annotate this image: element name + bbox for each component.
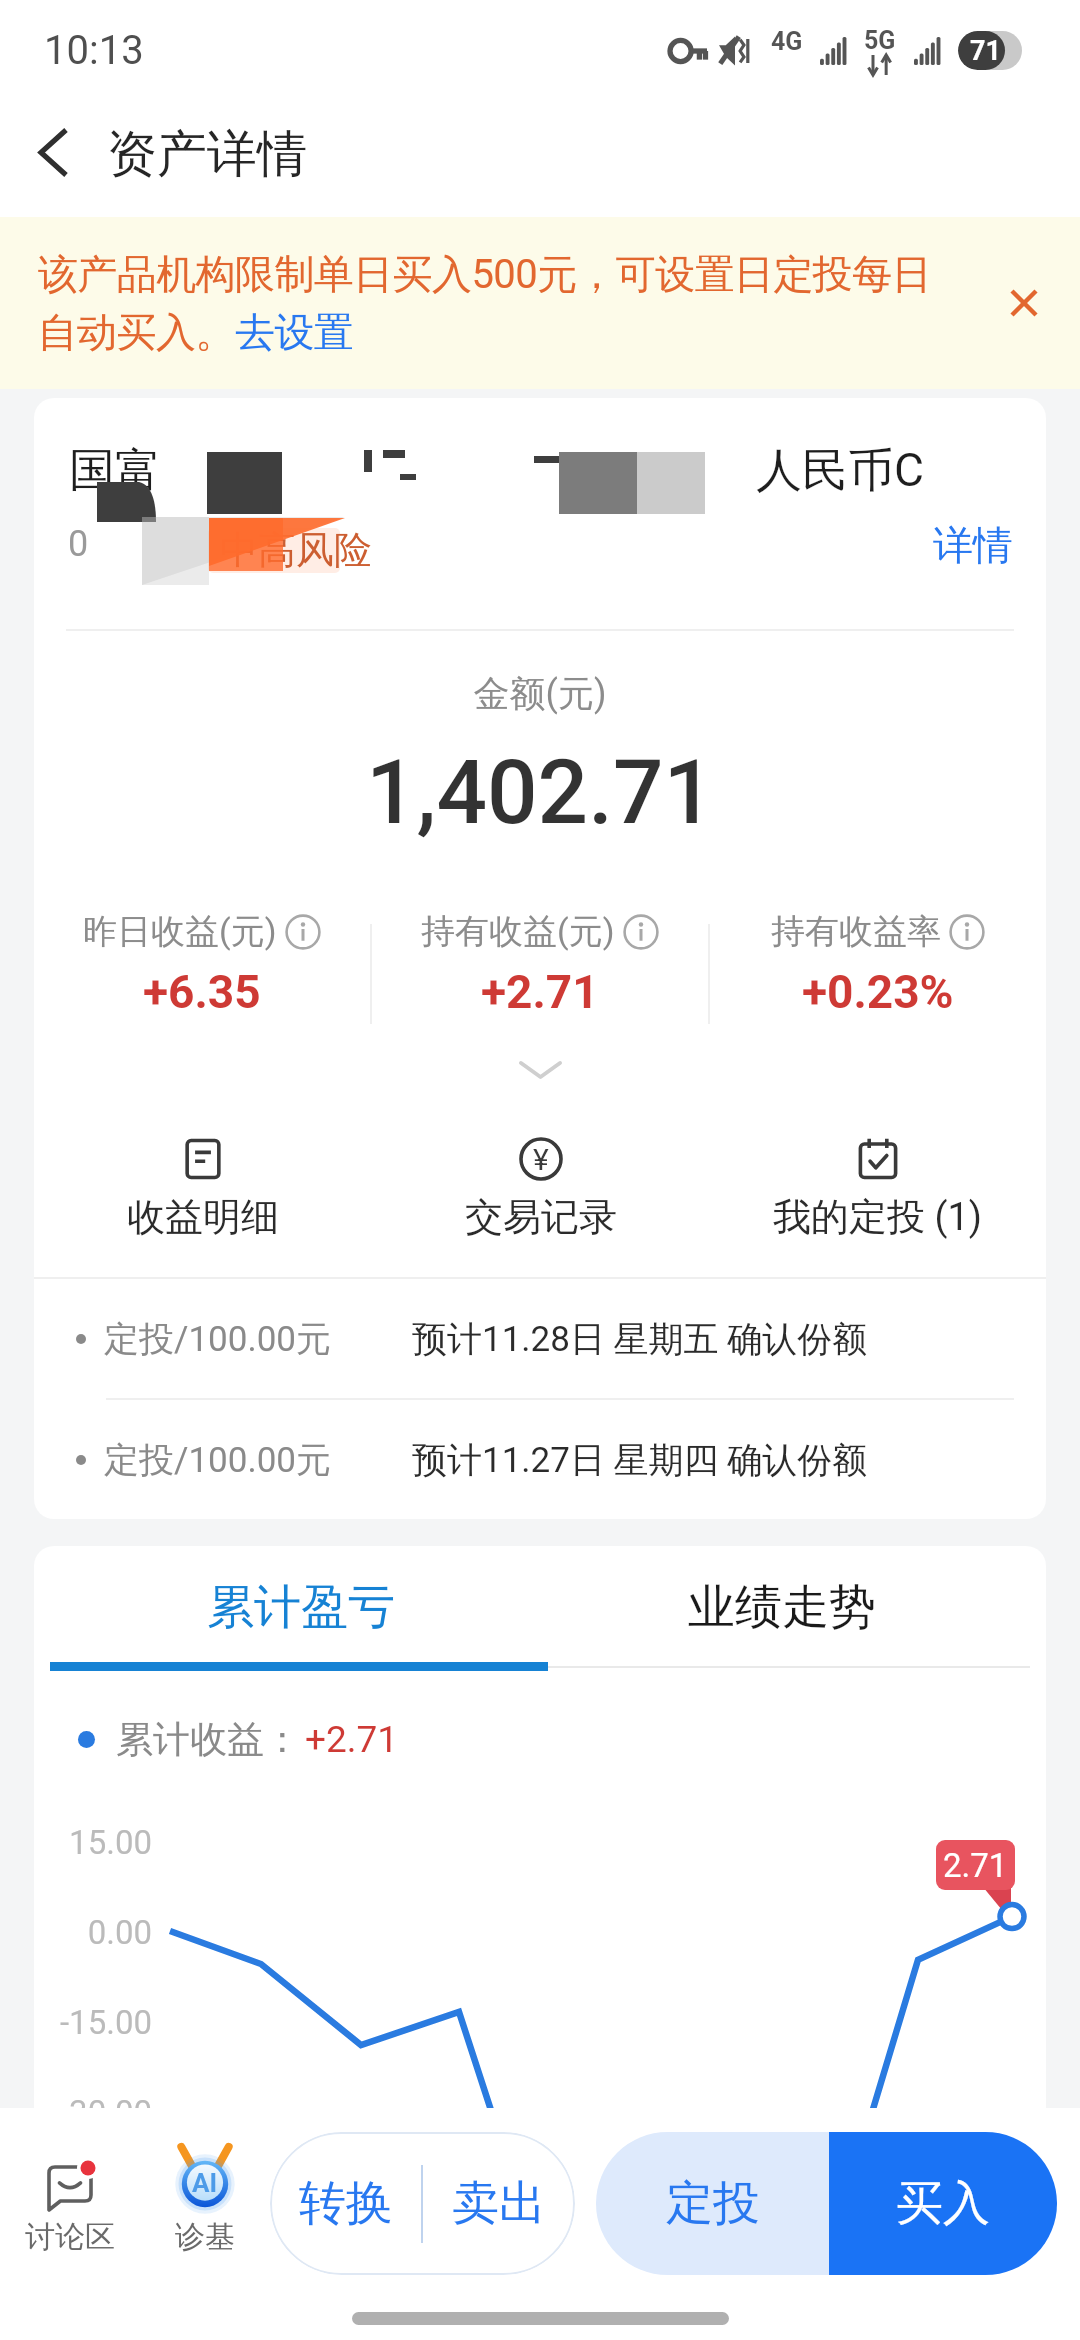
staticText: +2.71 [305,1718,399,1761]
staticText: +2.71 [481,965,599,1019]
staticText: 0 [68,523,89,565]
button[interactable]: 昨日收益(元) [34,910,370,1038]
button[interactable]: Close banner [986,265,1062,341]
staticText: 5G [864,26,896,55]
staticText: 4G [771,27,803,56]
button[interactable]: 持有收益率 [710,910,1046,1038]
staticText: 交易记录 [465,1193,617,1241]
staticText: 人民币C [756,442,924,500]
staticText: 昨日收益(元) [83,910,277,953]
staticText: 金额(元) [34,671,1046,716]
button[interactable]: Back [13,119,93,199]
staticText: 我的定投 (1) [773,1193,983,1241]
staticText: 转换 [299,2174,393,2233]
staticText: 15.00 [69,1823,152,1862]
staticText: 资产详情 [107,123,307,186]
staticText: 累计盈亏 [207,1578,395,1637]
staticText: 定投 [666,2174,760,2233]
staticText: AI [192,2168,218,2198]
staticText: +6.35 [143,965,261,1019]
staticText: 自动买入。 [38,307,235,357]
staticText: 国富 [69,442,161,500]
staticText: +0.23% [802,965,954,1019]
staticText: 该产品机构限制单日买入500元，可设置日定投每日 [38,249,932,299]
staticText: 71 [970,35,1001,67]
staticText: 去设置 [235,307,354,357]
staticText: 预计11.27日 星期四 确认份额 [412,1438,868,1482]
button[interactable]: 买入 [829,2132,1057,2275]
button[interactable]: 定投/100.00元 [34,1279,1046,1398]
staticText: -30.00 [59,2093,152,2132]
staticText: 定投/100.00元 [104,1438,332,1482]
button[interactable]: 我的定投 (1) [709,1137,1046,1277]
staticText: -15.00 [59,2003,152,2042]
staticText: ¥ [533,1142,549,1177]
staticText: 10:13 [44,27,144,74]
staticText: 讨论区 [25,2218,115,2256]
button[interactable]: AI [140,2131,270,2275]
staticText: 业绩走势 [688,1578,876,1637]
button[interactable]: 累计盈亏 [34,1546,540,1668]
staticText: 持有收益率 [771,910,941,953]
button[interactable]: 详情 [933,520,1013,570]
button[interactable]: ¥ [372,1137,709,1277]
button[interactable]: 定投 [596,2132,829,2275]
button[interactable]: 卖出 [423,2132,575,2275]
staticText: 中高风险 [220,526,372,574]
staticText: 0.00 [87,1913,152,1952]
staticText: 2.71 [943,1846,1008,1885]
button[interactable]: 收益明细 [34,1137,372,1277]
staticText: 累计收益： [116,1716,301,1762]
button[interactable]: 转换 [270,2132,421,2275]
staticText: 买入 [896,2174,990,2233]
staticText: 定投/100.00元 [104,1317,332,1361]
button[interactable]: 定投/100.00元 [34,1400,1046,1519]
staticText: 1,402.71 [34,740,1046,844]
staticText: 预计11.28日 星期五 确认份额 [412,1317,868,1361]
button[interactable]: 讨论区 [0,2131,140,2275]
button[interactable]: 持有收益(元) [372,910,708,1038]
staticText: 卖出 [452,2174,546,2233]
button[interactable]: 业绩走势 [540,1546,1046,1668]
staticText: 持有收益(元) [421,910,615,953]
staticText: 诊基 [175,2218,235,2256]
staticText: 收益明细 [127,1193,279,1241]
